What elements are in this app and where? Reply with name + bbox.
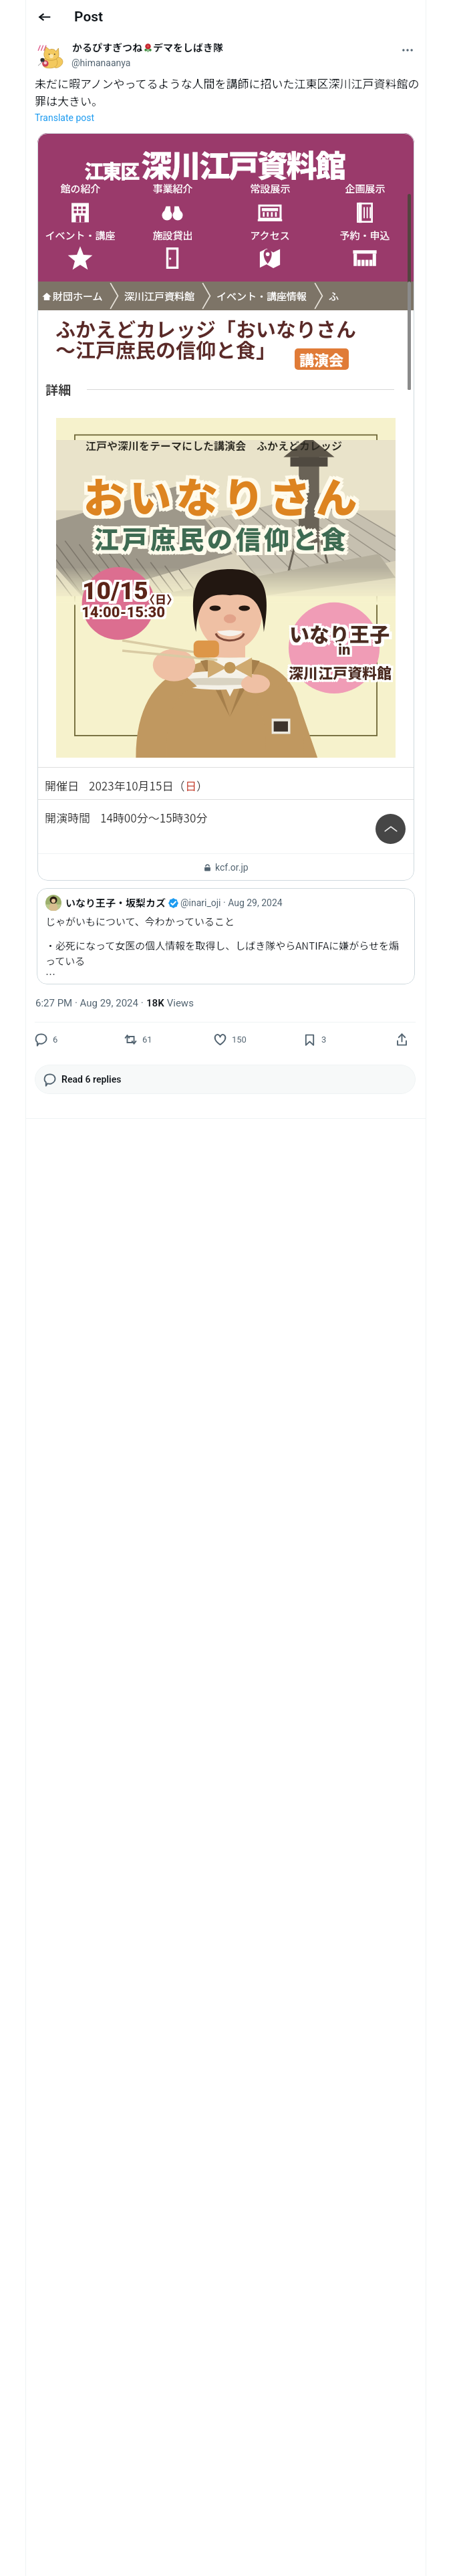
staticText: 10/15 <box>80 579 146 608</box>
staticText: 〈日〉 <box>142 589 176 606</box>
staticText: 未だに暇アノンやってるような人間を講師に招いた江東区深川江戸資料館の罪は大きい。 <box>35 75 421 109</box>
staticText: in <box>338 643 351 661</box>
staticText: in <box>336 641 349 659</box>
button[interactable]: Bookmark <box>298 1028 332 1051</box>
staticText: 〈日〉 <box>144 589 178 606</box>
staticText: Post <box>74 9 104 25</box>
staticText: 10/15 <box>82 574 148 603</box>
staticText: 6:27 PM · Aug 29, 2024 · <box>35 997 146 1009</box>
staticText: 予約・申込 <box>339 228 390 243</box>
staticText: 深川江戸資料館 <box>287 661 390 683</box>
staticText: ～江戸庶民の信仰と食」 <box>55 334 276 363</box>
staticText: ） <box>196 777 208 794</box>
button[interactable]: Share <box>390 1028 414 1051</box>
staticText: 2023年10月15日（ <box>89 777 185 794</box>
staticText: 150 <box>232 1035 247 1045</box>
staticText: … <box>45 967 56 982</box>
staticText: 事業紹介 <box>152 181 193 196</box>
staticText: 〈日〉 <box>146 589 180 606</box>
button[interactable]: More options <box>394 37 421 64</box>
staticText: ふ <box>329 289 339 304</box>
staticText: in <box>336 639 349 657</box>
staticText: おいなりさん <box>80 461 359 522</box>
staticText: 日 <box>185 777 196 794</box>
staticText: 企画展示 <box>345 181 386 196</box>
staticText: 14:00-15:30 <box>84 604 168 621</box>
button[interactable]: 江東区 <box>37 133 414 881</box>
staticText: @inari_oji · Aug 29, 2024 <box>180 897 283 908</box>
staticText: いなり王子 <box>289 617 390 645</box>
staticText: 深川江戸資料館 <box>291 661 394 683</box>
staticText: 深川江戸資料館 <box>291 663 394 685</box>
button[interactable]: いなり王子・坂梨カズ <box>37 888 415 984</box>
button[interactable]: Reply <box>29 1028 63 1051</box>
staticText: いなり王子 <box>287 621 388 650</box>
staticText: 〈日〉 <box>142 591 176 607</box>
staticText: 14:00-15:30 <box>80 604 164 621</box>
staticText: おいなりさん <box>87 461 366 522</box>
staticText: 江戸庶民の信仰と食 <box>97 523 353 560</box>
staticText: 江戸庶民の信仰と食 <box>91 520 347 556</box>
staticText: in <box>336 643 349 661</box>
button[interactable]: Back <box>31 3 57 30</box>
button[interactable]: Like <box>208 1028 252 1051</box>
staticText: in <box>338 639 351 657</box>
staticText: 14:00-15:30 <box>82 602 166 619</box>
staticText: 深川江戸資料館 <box>291 659 394 681</box>
staticText: おいなりさん <box>87 468 366 528</box>
staticText: 常設展示 <box>250 181 291 196</box>
staticText: いなり王子 <box>289 621 390 650</box>
button[interactable]: Repost <box>119 1028 158 1051</box>
staticText: 〈日〉 <box>144 591 178 607</box>
staticText: Translate post <box>35 112 95 123</box>
staticText: @himanaanya <box>71 58 131 68</box>
staticText: かるぴすぎつね <box>72 40 143 55</box>
staticText: 10/15 <box>85 579 151 608</box>
staticText: ・必死になって女医の個人情報を取得し、しばき隊やらANTIFAに嫌がらせを煽って… <box>45 938 402 968</box>
staticText: 財団ホーム <box>53 289 103 304</box>
staticText: Views <box>164 997 194 1009</box>
staticText: 講演会 <box>299 348 344 370</box>
staticText: 江戸や深川をテーマにした講演会 ふかえどカレッジ <box>86 437 343 453</box>
staticText: 61 <box>142 1035 152 1045</box>
staticText: in <box>340 641 353 659</box>
staticText: kcf.or.jp <box>215 862 249 873</box>
staticText: Read 6 replies <box>61 1074 122 1085</box>
staticText: 〈日〉 <box>144 593 178 609</box>
staticText: 14:00-15:30 <box>84 602 168 619</box>
staticText: 開催日 <box>45 777 79 794</box>
staticText: 深川江戸資料館 <box>289 659 392 681</box>
staticText: いなり王子 <box>292 619 392 647</box>
staticText: おいなりさん <box>87 465 366 525</box>
staticText: 江東区 <box>84 156 139 184</box>
staticText: 〈日〉 <box>142 593 176 609</box>
staticText: おいなりさん <box>80 465 359 525</box>
staticText: 3 <box>321 1035 327 1045</box>
staticText: 14:00-15:30 <box>80 606 164 623</box>
staticText: 6 <box>53 1035 58 1045</box>
staticText: 深川江戸資料館 <box>289 661 392 683</box>
button[interactable]: Translate post <box>35 112 95 123</box>
button[interactable]: Read 6 replies <box>35 1065 416 1094</box>
staticText: 深川江戸資料館 <box>287 659 390 681</box>
staticText: おいなりさん <box>84 465 363 525</box>
staticText: デマをしばき隊 <box>153 40 224 55</box>
staticText: in <box>340 643 353 661</box>
staticText: 詳細 <box>45 380 71 399</box>
staticText: いなり王子 <box>287 617 388 645</box>
button[interactable]: Scroll to top <box>375 814 406 844</box>
staticText: おいなりさん <box>84 468 363 528</box>
staticText: イベント・講座 <box>45 228 116 243</box>
staticText: ふかえどカレッジ「おいなりさん <box>55 314 356 342</box>
staticText: 14時00分～15時30分 <box>100 809 208 826</box>
staticText: 施設貸出 <box>152 228 193 243</box>
staticText: 江戸庶民の信仰と食 <box>91 517 347 554</box>
staticText: じゃがいもについて、今わかっていること <box>45 914 235 929</box>
staticText: 江戸庶民の信仰と食 <box>97 520 353 556</box>
staticText: in <box>338 641 351 659</box>
staticText: いなり王子・坂梨カズ <box>65 895 166 910</box>
staticText: アクセス <box>250 228 290 243</box>
staticText: 10/15 <box>82 576 148 605</box>
staticText: 江戸庶民の信仰と食 <box>91 523 347 560</box>
staticText: 18K <box>146 997 164 1009</box>
